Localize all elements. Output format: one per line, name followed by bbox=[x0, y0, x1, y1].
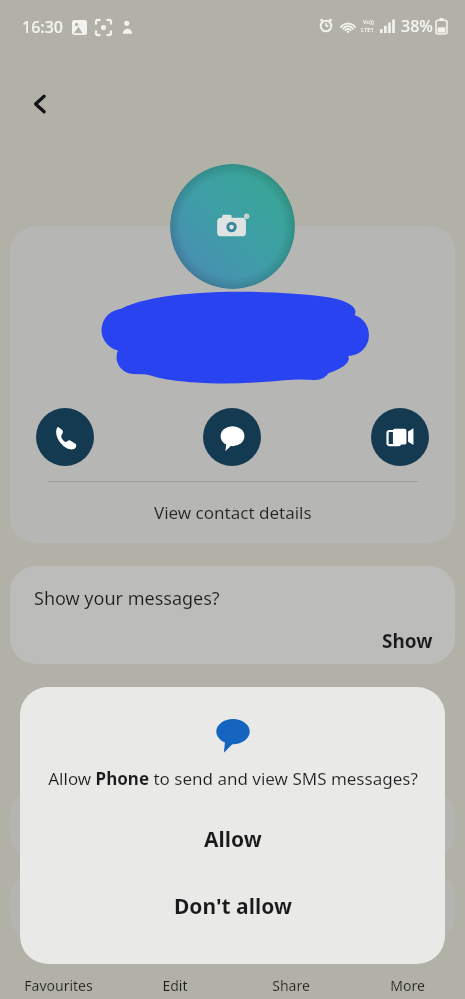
staticText: More bbox=[390, 976, 425, 995]
staticText: Show bbox=[382, 628, 433, 654]
staticText: Show your messages? bbox=[34, 586, 220, 611]
button[interactable]: Edit bbox=[117, 972, 233, 999]
staticText: Allow bbox=[204, 825, 262, 854]
button[interactable]: Favourites bbox=[0, 972, 117, 999]
button[interactable]: Show bbox=[372, 622, 443, 660]
staticText: LTE1 bbox=[361, 26, 375, 34]
button[interactable]: Share bbox=[233, 972, 349, 999]
staticText: Don't allow bbox=[174, 892, 292, 921]
staticText: 16:30 bbox=[22, 16, 63, 38]
button[interactable]: View contact details bbox=[10, 482, 455, 543]
button[interactable]: Message bbox=[203, 408, 261, 466]
staticText: Allow Phone to send and view SMS message… bbox=[48, 767, 418, 790]
button[interactable]: Back bbox=[16, 80, 64, 128]
button[interactable]: Contact photo bbox=[170, 164, 295, 289]
button[interactable]: Don't allow bbox=[20, 883, 445, 929]
button[interactable]: Allow bbox=[20, 816, 445, 862]
button[interactable]: Call bbox=[36, 408, 94, 466]
button[interactable]: More bbox=[349, 972, 465, 999]
staticText: 38% bbox=[401, 15, 433, 37]
staticText: Favourites bbox=[24, 976, 93, 995]
staticText: Vo)) bbox=[363, 18, 374, 26]
staticText: Edit bbox=[162, 976, 188, 995]
staticText: Share bbox=[272, 976, 310, 995]
staticText: View contact details bbox=[154, 501, 312, 524]
button[interactable]: Video call bbox=[371, 408, 429, 466]
